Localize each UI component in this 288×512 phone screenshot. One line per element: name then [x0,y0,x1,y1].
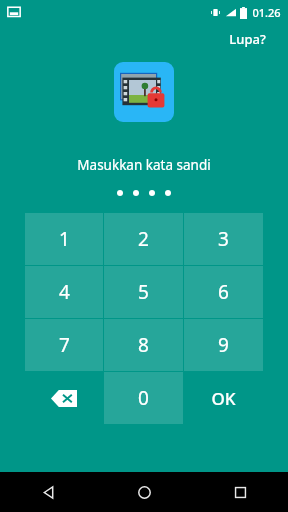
button[interactable]: Home [96,472,192,512]
other: App icon [114,62,174,122]
staticText: 1 [59,226,70,252]
staticText: Masukkan kata sandi [0,156,288,174]
staticText: 8 [138,332,149,358]
button[interactable]: Recents [192,472,288,512]
button[interactable]: 4 [25,266,103,318]
staticText: 9 [218,332,229,358]
button[interactable]: 8 [104,319,183,371]
button[interactable]: 2 [104,213,183,265]
button[interactable]: Backspace [25,372,103,424]
button[interactable]: Lupa? [207,26,288,52]
staticText: 6 [218,279,229,305]
staticText: Lupa? [229,30,266,48]
staticText: 7 [59,332,70,358]
staticText: OK [211,387,236,410]
button[interactable]: 1 [25,213,103,265]
staticText: 5 [138,279,149,305]
button[interactable]: 6 [184,266,263,318]
button[interactable]: OK [184,372,263,424]
staticText: 0 [138,385,149,411]
staticText: 4 [59,279,70,305]
button[interactable]: 0 [104,372,183,424]
staticText: 01.26 [252,5,281,20]
button[interactable]: Back [0,472,96,512]
button[interactable]: 9 [184,319,263,371]
staticText: 3 [218,226,229,252]
button[interactable]: 3 [184,213,263,265]
staticText: 2 [138,226,149,252]
button[interactable]: 7 [25,319,103,371]
button[interactable]: 5 [104,266,183,318]
